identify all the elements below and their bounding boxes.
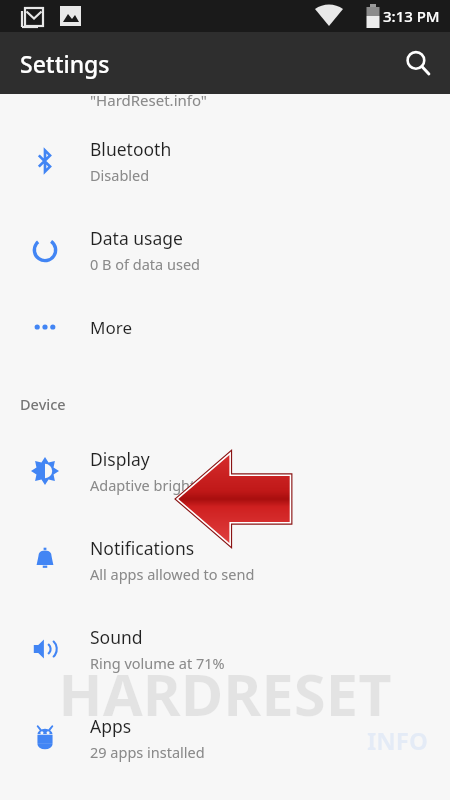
button[interactable]: Notifications: [0, 515, 450, 604]
staticText: 29 apps installed: [90, 742, 205, 762]
staticText: Bluetooth: [90, 137, 172, 161]
staticText: Settings: [20, 48, 110, 79]
staticText: All apps allowed to send: [90, 564, 255, 584]
staticText: Disabled: [90, 165, 150, 185]
staticText: Display: [90, 447, 150, 471]
staticText: Data usage: [90, 226, 183, 250]
button[interactable]: Search: [394, 39, 442, 87]
button[interactable]: Data usage: [0, 205, 450, 294]
staticText: Notifications: [90, 536, 195, 560]
button[interactable]: Sound: [0, 604, 450, 693]
button[interactable]: Apps: [0, 693, 450, 782]
staticText: Device: [20, 394, 66, 414]
button[interactable]: More: [0, 294, 450, 360]
staticText: HARDRESET: [0, 654, 450, 733]
button[interactable]: Bluetooth: [0, 116, 450, 205]
staticText: Apps: [90, 714, 132, 738]
staticText: 3:13 PM: [383, 6, 440, 26]
staticText: Adaptive brightness is ON: [90, 475, 267, 495]
staticText: INFO: [0, 724, 428, 757]
staticText: Ring volume at 71%: [90, 653, 225, 673]
staticText: More: [90, 316, 132, 339]
button[interactable]: Display: [0, 426, 450, 515]
staticText: Sound: [90, 625, 143, 649]
staticText: "HardReset.info": [90, 90, 207, 110]
staticText: 0 B of data used: [90, 254, 200, 274]
